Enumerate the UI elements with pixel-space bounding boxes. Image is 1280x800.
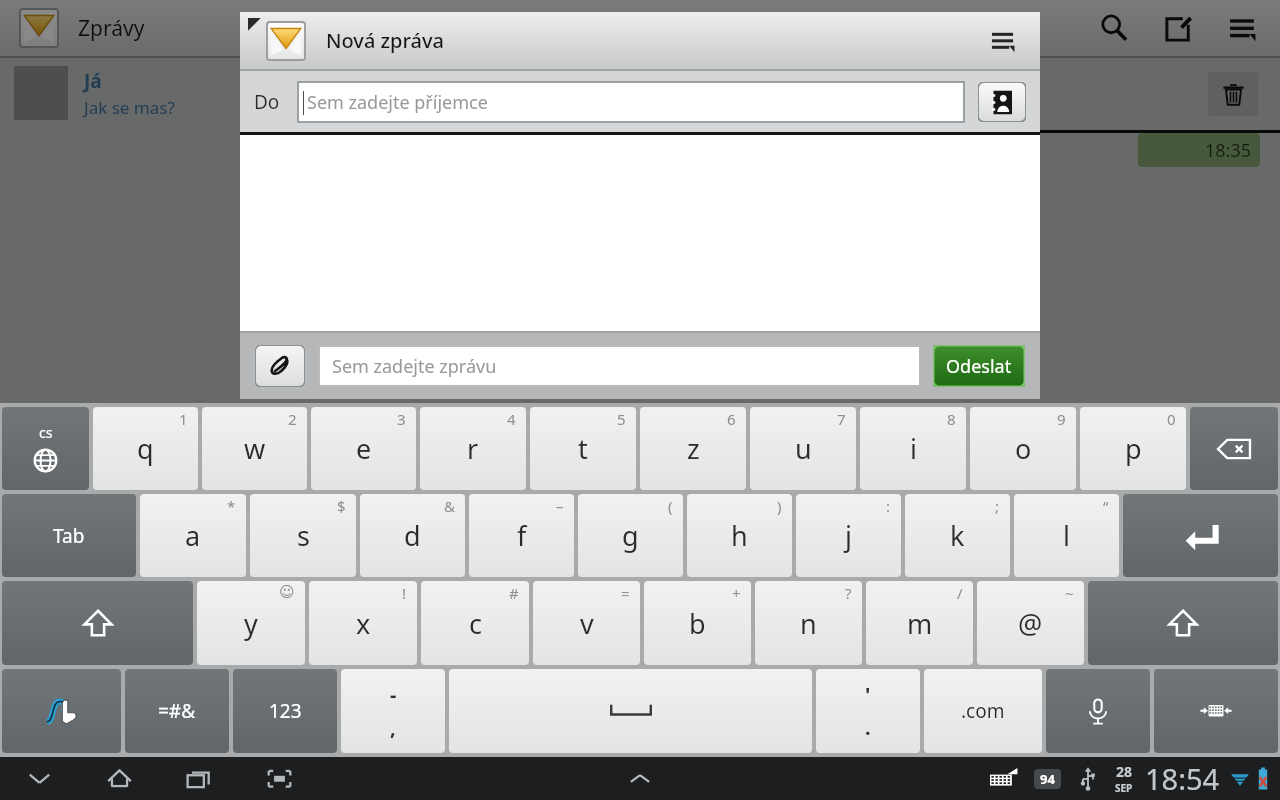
staticText: = — [621, 583, 630, 603]
button[interactable]: Gesture input — [2, 669, 121, 753]
staticText: ' — [865, 681, 871, 708]
button[interactable]: Recent apps — [176, 757, 222, 800]
staticText: ( — [668, 496, 673, 516]
staticText: g — [622, 517, 639, 554]
button[interactable]: 5 — [530, 407, 636, 490]
staticText: d — [404, 517, 421, 554]
staticText: Jak se mas? — [84, 96, 175, 119]
staticText: 94 — [1040, 770, 1055, 788]
button[interactable]: Change language — [2, 407, 89, 490]
button[interactable]: More options — [1210, 0, 1274, 56]
button[interactable]: More options — [974, 12, 1032, 69]
button[interactable]: ; — [905, 494, 1010, 577]
staticText: ☺ — [279, 583, 295, 600]
button[interactable]: * — [140, 494, 246, 577]
button[interactable]: Shift — [1088, 581, 1278, 665]
button[interactable]: = — [533, 581, 640, 665]
staticText: l — [1063, 517, 1070, 554]
button[interactable]: Sem zadejte příjemce — [298, 82, 964, 122]
button[interactable]: “ — [1014, 494, 1119, 577]
staticText: z — [687, 430, 700, 467]
button[interactable]: Search — [1082, 0, 1146, 56]
button[interactable]: : — [796, 494, 901, 577]
staticText: 4 — [507, 409, 516, 429]
staticText: q — [137, 430, 154, 467]
button[interactable]: ? — [755, 581, 862, 665]
button[interactable]: .com — [924, 669, 1042, 753]
button[interactable]: 123 — [233, 669, 337, 753]
staticText: f — [517, 517, 527, 554]
staticText: 6 — [727, 409, 736, 429]
button[interactable]: Odeslat — [933, 345, 1025, 387]
button[interactable]: ! — [309, 581, 417, 665]
button[interactable]: Select contacts — [978, 82, 1026, 122]
staticText: : — [886, 496, 891, 516]
staticText: ! — [402, 583, 407, 603]
staticText: Zprávy — [78, 14, 145, 43]
button[interactable]: Sem zadejte zprávu — [319, 346, 920, 386]
button[interactable]: Tab — [2, 494, 136, 577]
staticText: # — [509, 583, 519, 603]
staticText: $ — [337, 496, 346, 516]
staticText: i — [910, 430, 917, 467]
button[interactable]: ☺ — [197, 581, 305, 665]
button[interactable]: Shift — [2, 581, 193, 665]
button[interactable]: Keyboard — [990, 768, 1018, 790]
button[interactable]: # — [421, 581, 529, 665]
button[interactable]: ) — [687, 494, 792, 577]
button[interactable]: 0 — [1080, 407, 1186, 490]
button[interactable]: 3 — [311, 407, 416, 490]
button[interactable]: Backspace — [1190, 407, 1278, 490]
button[interactable]: + — [644, 581, 751, 665]
button[interactable]: 9 — [970, 407, 1076, 490]
button[interactable]: - — [341, 669, 445, 753]
staticText: @ — [1018, 605, 1043, 642]
button[interactable]: Attach — [255, 345, 305, 387]
button[interactable]: 7 — [750, 407, 856, 490]
button[interactable]: – — [469, 494, 574, 577]
staticText: – — [556, 496, 564, 516]
staticText: / — [957, 583, 963, 603]
button[interactable]: Voice input — [1046, 669, 1150, 753]
button[interactable]: ( — [578, 494, 683, 577]
staticText: 8 — [947, 409, 956, 429]
button[interactable]: 8 — [860, 407, 966, 490]
staticText: Tab — [53, 523, 85, 549]
button[interactable]: Back — [16, 757, 62, 800]
staticText: k — [950, 517, 965, 554]
button[interactable]: & — [360, 494, 465, 577]
button[interactable]: ' — [816, 669, 920, 753]
staticText: , — [390, 714, 396, 741]
button[interactable]: Expand notifications — [617, 757, 663, 800]
button[interactable]: 1 — [93, 407, 198, 490]
button[interactable]: Hide keyboard — [1154, 669, 1278, 753]
staticText: w — [244, 430, 266, 467]
staticText: 28 — [1116, 762, 1133, 781]
button[interactable]: Home — [96, 757, 142, 800]
staticText: s — [297, 517, 310, 554]
staticText: - — [390, 681, 397, 708]
staticText: cs — [39, 423, 53, 442]
staticText: 0 — [1167, 409, 1176, 429]
staticText: 1 — [179, 409, 188, 429]
button[interactable]: Enter — [1123, 494, 1278, 577]
button[interactable]: =#& — [125, 669, 229, 753]
button[interactable]: 4 — [420, 407, 526, 490]
button[interactable]: Screenshot — [256, 757, 302, 800]
button[interactable]: Space — [449, 669, 812, 753]
staticText: ? — [845, 583, 852, 603]
button[interactable]: Delete — [1208, 72, 1258, 116]
button[interactable]: 2 — [202, 407, 307, 490]
staticText: b — [689, 605, 706, 642]
button[interactable]: New message — [1146, 0, 1210, 56]
staticText: ; — [995, 496, 1000, 516]
button[interactable]: $ — [250, 494, 356, 577]
button[interactable]: ~ — [977, 581, 1084, 665]
staticText: 7 — [837, 409, 846, 429]
button[interactable]: 6 — [640, 407, 746, 490]
button[interactable]: / — [866, 581, 973, 665]
staticText: j — [845, 517, 852, 554]
staticText: n — [800, 605, 817, 642]
staticText: c — [469, 605, 482, 642]
staticText: Sem zadejte příjemce — [307, 90, 488, 115]
